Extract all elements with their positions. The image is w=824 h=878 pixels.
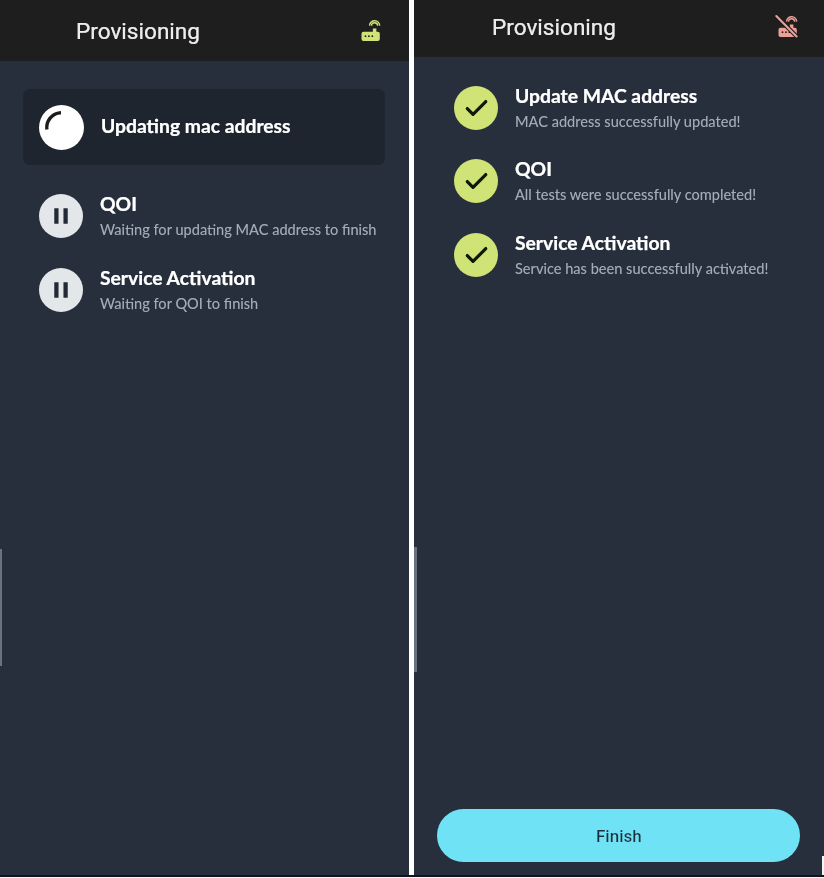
staticText: Provisioning xyxy=(492,14,617,40)
button[interactable]: Updating mac address xyxy=(23,89,385,165)
button[interactable]: QOI xyxy=(39,194,377,238)
staticText: Waiting for QOI to finish xyxy=(100,295,259,313)
staticText: Service Activation xyxy=(515,231,671,254)
button[interactable]: Router disconnected xyxy=(777,17,797,37)
staticText: Waiting for updating MAC address to fini… xyxy=(100,221,377,239)
button[interactable]: Service Activation xyxy=(39,268,259,312)
staticText: QOI xyxy=(100,192,137,215)
button[interactable]: Router connected xyxy=(360,21,380,41)
staticText: Updating mac address xyxy=(101,114,291,137)
staticText: QOI xyxy=(515,157,552,180)
staticText: All tests were successfully completed! xyxy=(515,186,757,204)
button[interactable]: QOI xyxy=(454,159,757,203)
button[interactable]: Finish xyxy=(437,809,800,862)
button[interactable]: Update MAC address xyxy=(454,86,741,130)
staticText: Provisioning xyxy=(76,18,201,44)
staticText: Service Activation xyxy=(100,266,256,289)
staticText: Update MAC address xyxy=(515,84,698,107)
button[interactable]: Service Activation xyxy=(454,233,769,277)
staticText: Finish xyxy=(596,826,642,846)
staticText: Service has been successfully activated! xyxy=(515,260,769,278)
staticText: MAC address successfully updated! xyxy=(515,113,741,131)
